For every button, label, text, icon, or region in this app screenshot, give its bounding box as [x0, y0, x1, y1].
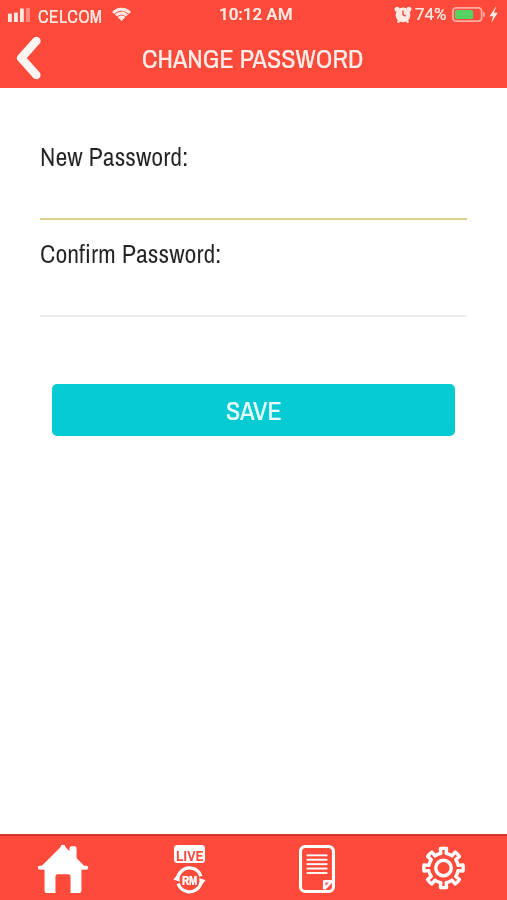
- staticText: CELCOM: [38, 4, 103, 28]
- button[interactable]: Documents: [253, 834, 380, 900]
- button[interactable]: SAVE: [52, 384, 455, 436]
- staticText: New Password:: [40, 139, 189, 174]
- staticText: 10:12 AM: [219, 4, 293, 24]
- staticText: CHANGE PASSWORD: [142, 41, 364, 76]
- staticText: SAVE: [226, 393, 282, 428]
- staticText: LIVE: [176, 845, 204, 863]
- button[interactable]: Back: [3, 34, 49, 82]
- staticText: 74%: [415, 4, 447, 24]
- staticText: Confirm Password:: [40, 236, 222, 271]
- button[interactable]: Live RM: [126, 834, 253, 900]
- button[interactable]: Home: [0, 834, 126, 900]
- button[interactable]: Settings: [380, 834, 507, 900]
- staticText: RM: [182, 873, 198, 889]
